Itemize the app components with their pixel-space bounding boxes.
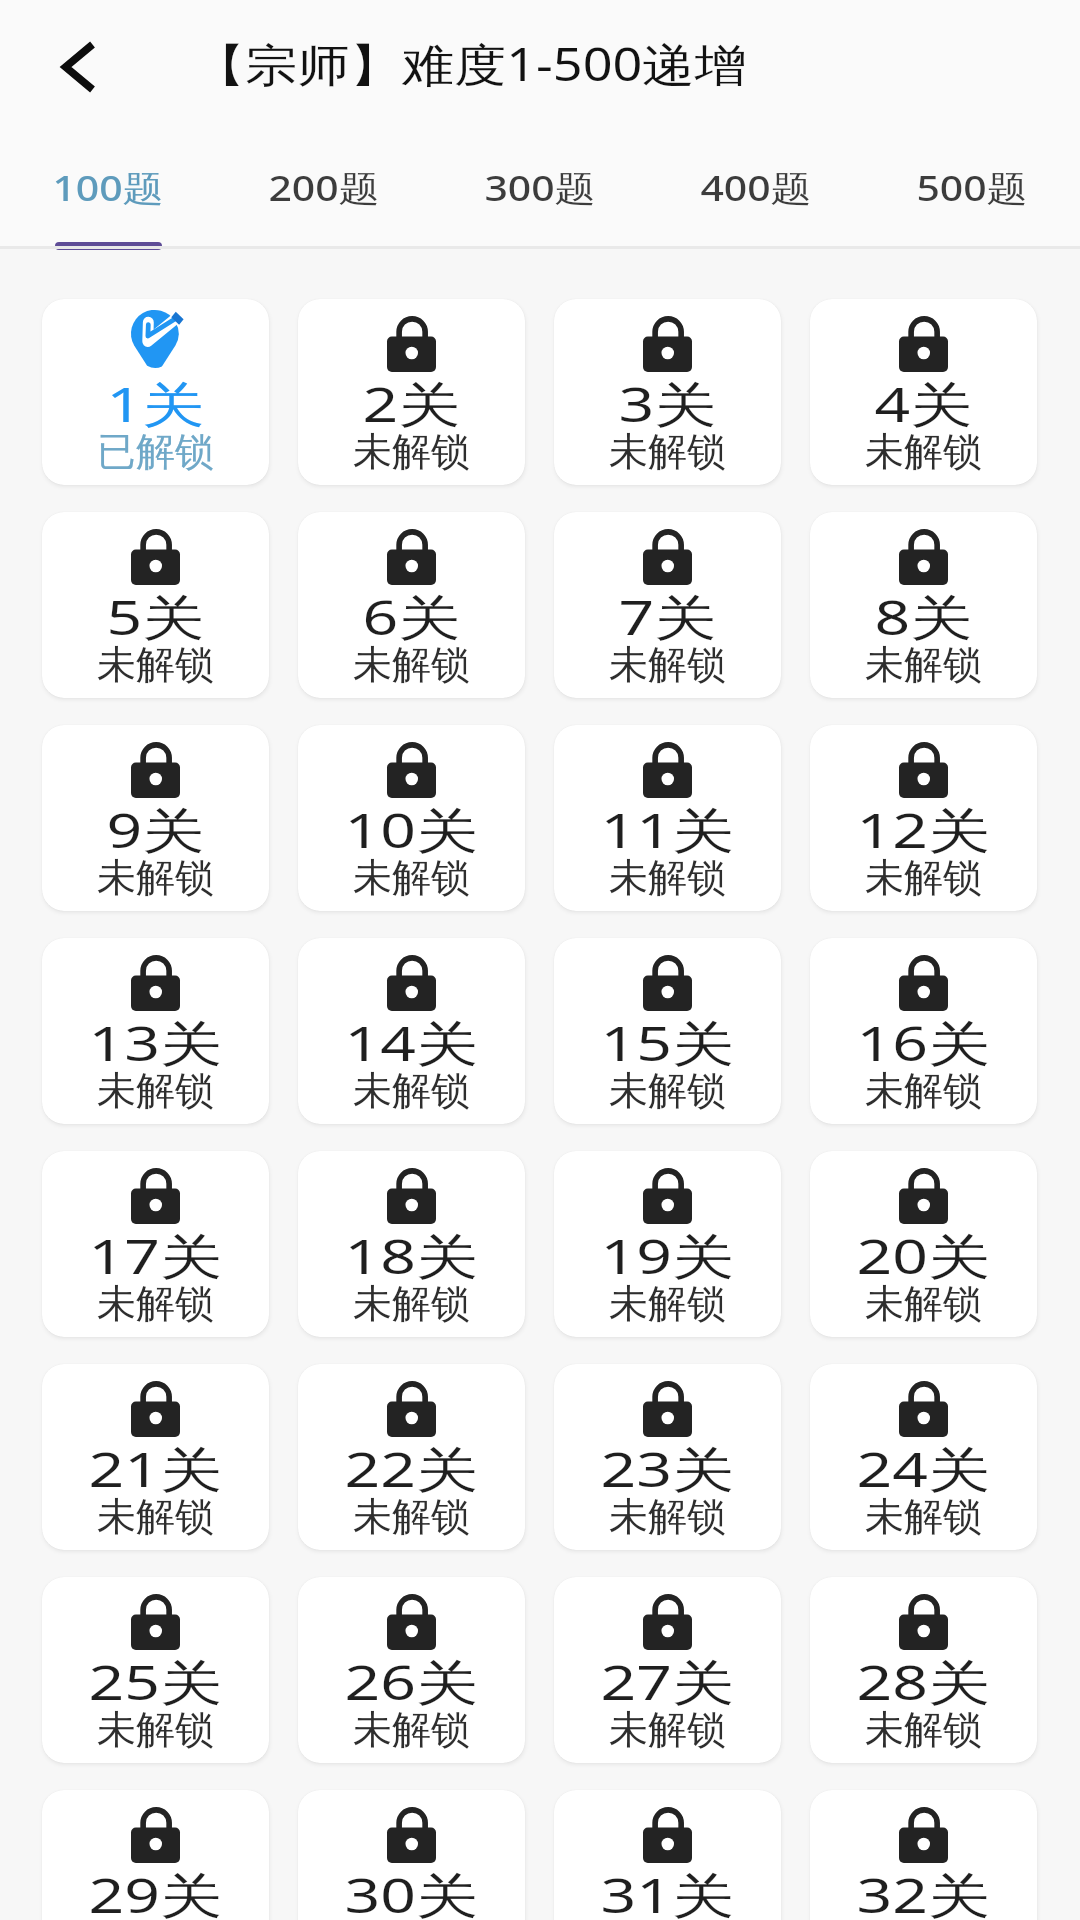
button[interactable]: 11关 bbox=[554, 725, 781, 911]
staticText: 未解锁 bbox=[810, 640, 1037, 689]
staticText: 1关 bbox=[42, 371, 269, 437]
staticText: 未解锁 bbox=[810, 1918, 1037, 1920]
button[interactable]: 22关 bbox=[298, 1364, 525, 1550]
button[interactable]: 24关 bbox=[810, 1364, 1037, 1550]
staticText: 28关 bbox=[810, 1649, 1037, 1715]
staticText: 未解锁 bbox=[42, 1492, 269, 1541]
button[interactable]: 10关 bbox=[298, 725, 525, 911]
staticText: 17关 bbox=[42, 1223, 269, 1289]
staticText: 14关 bbox=[298, 1010, 525, 1076]
button[interactable]: 25关 bbox=[42, 1577, 269, 1763]
staticText: 300题 bbox=[414, 164, 666, 212]
staticText: 未解锁 bbox=[554, 1066, 781, 1115]
button[interactable]: 18关 bbox=[298, 1151, 525, 1337]
staticText: 未解锁 bbox=[810, 853, 1037, 902]
staticText: 未解锁 bbox=[810, 1279, 1037, 1328]
button[interactable]: 23关 bbox=[554, 1364, 781, 1550]
staticText: 未解锁 bbox=[298, 1066, 525, 1115]
staticText: 18关 bbox=[298, 1223, 525, 1289]
staticText: 未解锁 bbox=[810, 1492, 1037, 1541]
staticText: 未解锁 bbox=[554, 1705, 781, 1754]
staticText: 未解锁 bbox=[42, 1066, 269, 1115]
button[interactable]: 26关 bbox=[298, 1577, 525, 1763]
button[interactable]: 27关 bbox=[554, 1577, 781, 1763]
button[interactable]: 19关 bbox=[554, 1151, 781, 1337]
staticText: 15关 bbox=[554, 1010, 781, 1076]
staticText: 9关 bbox=[42, 797, 269, 863]
staticText: 24关 bbox=[810, 1436, 1037, 1502]
button[interactable]: 13关 bbox=[42, 938, 269, 1124]
staticText: 已解锁 bbox=[42, 427, 269, 476]
button[interactable]: 28关 bbox=[810, 1577, 1037, 1763]
staticText: 8关 bbox=[810, 584, 1037, 650]
button[interactable]: 31关 bbox=[554, 1790, 781, 1920]
button[interactable]: 5关 bbox=[42, 512, 269, 698]
button[interactable]: 400题 bbox=[648, 143, 864, 249]
staticText: 未解锁 bbox=[554, 427, 781, 476]
staticText: 未解锁 bbox=[554, 853, 781, 902]
button[interactable]: 4关 bbox=[810, 299, 1037, 485]
staticText: 未解锁 bbox=[554, 640, 781, 689]
staticText: 未解锁 bbox=[298, 1279, 525, 1328]
staticText: 未解锁 bbox=[42, 1918, 269, 1920]
button[interactable]: 1关 bbox=[42, 299, 269, 485]
staticText: 3关 bbox=[554, 371, 781, 437]
staticText: 未解锁 bbox=[298, 853, 525, 902]
staticText: 未解锁 bbox=[298, 1918, 525, 1920]
button[interactable]: 8关 bbox=[810, 512, 1037, 698]
staticText: 7关 bbox=[554, 584, 781, 650]
staticText: 未解锁 bbox=[298, 1705, 525, 1754]
button[interactable]: 100题 bbox=[0, 143, 216, 249]
staticText: 5关 bbox=[42, 584, 269, 650]
button[interactable]: 16关 bbox=[810, 938, 1037, 1124]
staticText: 未解锁 bbox=[810, 1705, 1037, 1754]
button[interactable]: 6关 bbox=[298, 512, 525, 698]
button[interactable]: 200题 bbox=[216, 143, 432, 249]
staticText: 未解锁 bbox=[298, 640, 525, 689]
staticText: 31关 bbox=[554, 1862, 781, 1920]
staticText: 27关 bbox=[554, 1649, 781, 1715]
staticText: 未解锁 bbox=[42, 853, 269, 902]
staticText: 未解锁 bbox=[42, 640, 269, 689]
staticText: 400题 bbox=[630, 164, 882, 212]
staticText: 25关 bbox=[42, 1649, 269, 1715]
staticText: 11关 bbox=[554, 797, 781, 863]
staticText: 22关 bbox=[298, 1436, 525, 1502]
staticText: 19关 bbox=[554, 1223, 781, 1289]
staticText: 200题 bbox=[198, 164, 450, 212]
staticText: 20关 bbox=[810, 1223, 1037, 1289]
button[interactable]: 500题 bbox=[864, 143, 1080, 249]
button[interactable]: Back bbox=[44, 32, 114, 102]
button[interactable]: 7关 bbox=[554, 512, 781, 698]
button[interactable]: 300题 bbox=[432, 143, 648, 249]
staticText: 未解锁 bbox=[554, 1918, 781, 1920]
staticText: 13关 bbox=[42, 1010, 269, 1076]
staticText: 未解锁 bbox=[554, 1279, 781, 1328]
button[interactable]: 21关 bbox=[42, 1364, 269, 1550]
staticText: 16关 bbox=[810, 1010, 1037, 1076]
staticText: 未解锁 bbox=[298, 1492, 525, 1541]
button[interactable]: 17关 bbox=[42, 1151, 269, 1337]
button[interactable]: 15关 bbox=[554, 938, 781, 1124]
staticText: 21关 bbox=[42, 1436, 269, 1502]
button[interactable]: 30关 bbox=[298, 1790, 525, 1920]
button[interactable]: 20关 bbox=[810, 1151, 1037, 1337]
button[interactable]: 14关 bbox=[298, 938, 525, 1124]
staticText: 未解锁 bbox=[810, 427, 1037, 476]
button[interactable]: 9关 bbox=[42, 725, 269, 911]
button[interactable]: 3关 bbox=[554, 299, 781, 485]
button[interactable]: 29关 bbox=[42, 1790, 269, 1920]
staticText: 2关 bbox=[298, 371, 525, 437]
staticText: 6关 bbox=[298, 584, 525, 650]
staticText: 未解锁 bbox=[554, 1492, 781, 1541]
staticText: 10关 bbox=[298, 797, 525, 863]
button[interactable]: 32关 bbox=[810, 1790, 1037, 1920]
staticText: 30关 bbox=[298, 1862, 525, 1920]
button[interactable]: 2关 bbox=[298, 299, 525, 485]
staticText: 【宗师】难度1-500递增 bbox=[193, 33, 747, 94]
button[interactable]: 12关 bbox=[810, 725, 1037, 911]
staticText: 未解锁 bbox=[810, 1066, 1037, 1115]
staticText: 4关 bbox=[810, 371, 1037, 437]
staticText: 100题 bbox=[0, 164, 234, 212]
staticText: 29关 bbox=[42, 1862, 269, 1920]
